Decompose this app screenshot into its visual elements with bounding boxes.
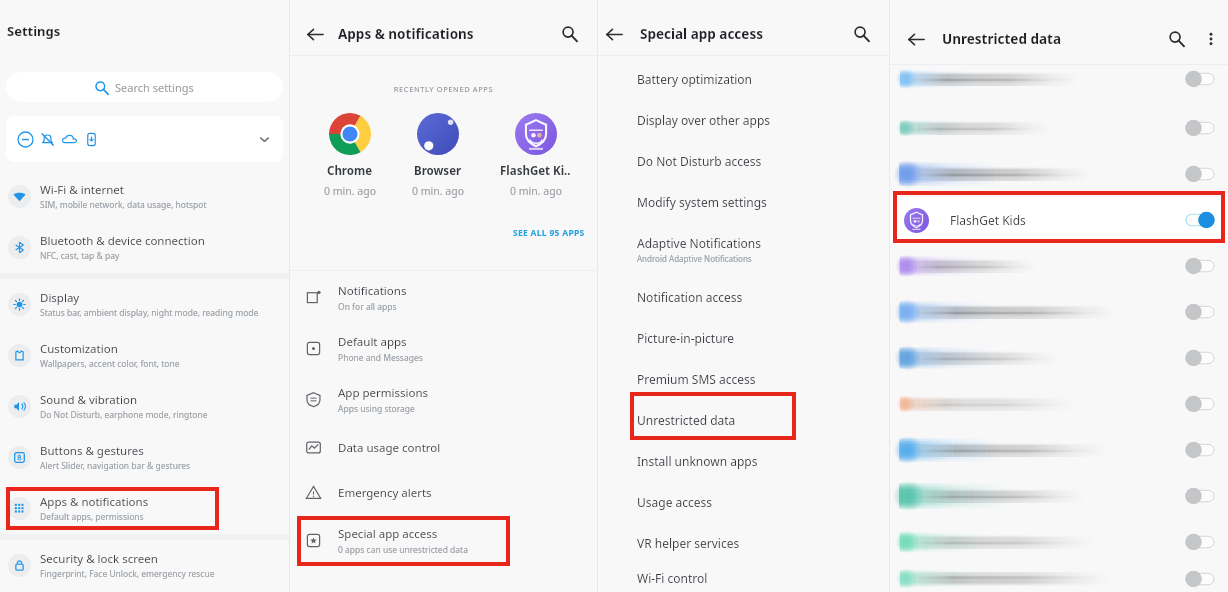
button[interactable]: Modify system settings (598, 181, 889, 222)
button[interactable]: Install unknown apps (598, 440, 889, 481)
button[interactable]: Toggle unrestricted data, off (890, 335, 1228, 381)
button[interactable]: Toggle unrestricted data, off (890, 381, 1228, 427)
staticText: Apps using storage (338, 403, 415, 415)
button[interactable]: Do Not Disturb (17, 131, 34, 148)
button[interactable]: Notifications (290, 272, 597, 323)
button[interactable]: App permissions (290, 374, 597, 425)
button[interactable]: Bluetooth & device connection (0, 222, 289, 273)
button[interactable]: Back (601, 21, 627, 47)
button[interactable]: Toggle unrestricted data, off (1186, 257, 1214, 275)
button[interactable]: Toggle unrestricted data, off (1186, 533, 1214, 551)
button[interactable]: Wi-Fi & internet (0, 171, 289, 222)
staticText: RECENTLY OPENED APPS (290, 84, 597, 94)
button[interactable]: Buttons & gestures (0, 432, 289, 483)
button[interactable]: Toggle unrestricted data, off (1186, 349, 1214, 367)
button[interactable]: Cloud sync (61, 131, 78, 148)
button[interactable]: Notification access (598, 276, 889, 317)
button[interactable]: Search (557, 21, 583, 47)
button[interactable]: Toggle unrestricted data, off (890, 427, 1228, 473)
staticText: Wi-Fi & internet (40, 182, 124, 198)
button[interactable]: VR helper services (598, 522, 889, 563)
button[interactable]: Unrestricted data (598, 399, 889, 440)
staticText: Unrestricted data (942, 30, 1062, 48)
button[interactable]: Usage access (598, 481, 889, 522)
button[interactable]: Toggle unrestricted data, off (1186, 487, 1214, 505)
staticText: App permissions (338, 385, 429, 401)
button[interactable]: Toggle unrestricted data, off (890, 243, 1228, 289)
button[interactable]: Expand quick settings (258, 133, 271, 146)
staticText: Wi-Fi control (637, 570, 708, 586)
staticText: Security & lock screen (40, 551, 158, 567)
staticText: Notifications (338, 283, 407, 299)
button[interactable]: Search (849, 21, 875, 47)
button[interactable]: Toggle unrestricted data, off (890, 289, 1228, 335)
button[interactable]: Display over other apps (598, 99, 889, 140)
button[interactable]: Browser (412, 113, 464, 198)
staticText: 0 apps can use unrestricted data (338, 544, 468, 556)
button[interactable]: FlashGet Kids (890, 197, 1228, 243)
button[interactable]: Search settings (6, 72, 283, 102)
button[interactable]: Toggle unrestricted data, on (1186, 211, 1214, 229)
staticText: Premium SMS access (637, 371, 756, 387)
staticText: NFC, cast, tap & pay (40, 250, 120, 262)
button[interactable]: Device storage (83, 131, 100, 148)
staticText: Alert Slider, navigation bar & gestures (40, 460, 191, 472)
button[interactable]: Battery optimization (598, 58, 889, 99)
button[interactable]: More options (1198, 26, 1224, 52)
staticText: Sound & vibration (40, 392, 137, 408)
button[interactable]: Picture-in-picture (598, 317, 889, 358)
button[interactable]: Toggle unrestricted data, off (1186, 441, 1214, 459)
button[interactable]: Sound & vibration (0, 381, 289, 432)
staticText: Install unknown apps (637, 453, 758, 469)
button[interactable]: Do Not Disturb (6, 116, 283, 162)
staticText: Chrome (327, 163, 373, 179)
button[interactable]: Toggle unrestricted data, off (1186, 70, 1214, 88)
staticText: SIM, mobile network, data usage, hotspot (40, 199, 207, 211)
staticText: Default apps (338, 334, 407, 350)
staticText: Wallpapers, accent color, font, tone (40, 358, 180, 370)
button[interactable]: Toggle unrestricted data, off (890, 65, 1228, 99)
staticText: Settings (7, 22, 61, 40)
staticText: Search settings (115, 80, 194, 95)
button[interactable]: Special app access (290, 515, 597, 566)
button[interactable]: Toggle unrestricted data, off (890, 519, 1228, 565)
button[interactable]: Adaptive Notifications (598, 222, 889, 276)
button[interactable]: Back (903, 26, 929, 52)
button[interactable]: Toggle unrestricted data, off (890, 565, 1228, 592)
button[interactable]: Search (1164, 26, 1190, 52)
button[interactable]: Display (0, 279, 289, 330)
button[interactable]: Toggle unrestricted data, off (1186, 570, 1214, 588)
button[interactable]: Chrome (324, 113, 376, 198)
button[interactable]: Wi-Fi control (598, 563, 889, 592)
staticText: Apps & notifications (338, 25, 474, 43)
button[interactable]: Mute notifications (39, 131, 56, 148)
staticText: Battery optimization (637, 71, 753, 87)
staticText: Emergency alerts (338, 485, 432, 501)
button[interactable]: FlashGet Ki.. (500, 113, 571, 198)
button[interactable]: Premium SMS access (598, 358, 889, 399)
staticText: 0 min. ago (324, 184, 376, 198)
staticText: VR helper services (637, 535, 740, 551)
staticText: Picture-in-picture (637, 330, 735, 346)
button[interactable]: Toggle unrestricted data, off (1186, 303, 1214, 321)
staticText: Notification access (637, 289, 743, 305)
button[interactable]: Default apps (290, 323, 597, 374)
button[interactable]: Toggle unrestricted data, off (890, 151, 1228, 197)
button[interactable]: Toggle unrestricted data, off (1186, 395, 1214, 413)
button[interactable]: Customization (0, 330, 289, 381)
button[interactable]: Emergency alerts (290, 470, 597, 515)
staticText: Data usage control (338, 440, 441, 456)
staticText: Customization (40, 341, 118, 357)
button[interactable]: Toggle unrestricted data, off (890, 105, 1228, 151)
button[interactable]: Toggle unrestricted data, off (890, 473, 1228, 519)
button[interactable]: Security & lock screen (0, 540, 289, 591)
button[interactable]: Toggle unrestricted data, off (1186, 119, 1214, 137)
button[interactable]: Do Not Disturb access (598, 140, 889, 181)
button[interactable]: Toggle unrestricted data, off (1186, 165, 1214, 183)
staticText: 0 min. ago (412, 184, 464, 198)
button[interactable]: Data usage control (290, 425, 597, 470)
button[interactable]: Apps & notifications (0, 483, 289, 534)
staticText: 0 min. ago (510, 184, 562, 198)
button[interactable]: SEE ALL 95 APPS (509, 223, 589, 243)
button[interactable]: Back (302, 21, 328, 47)
